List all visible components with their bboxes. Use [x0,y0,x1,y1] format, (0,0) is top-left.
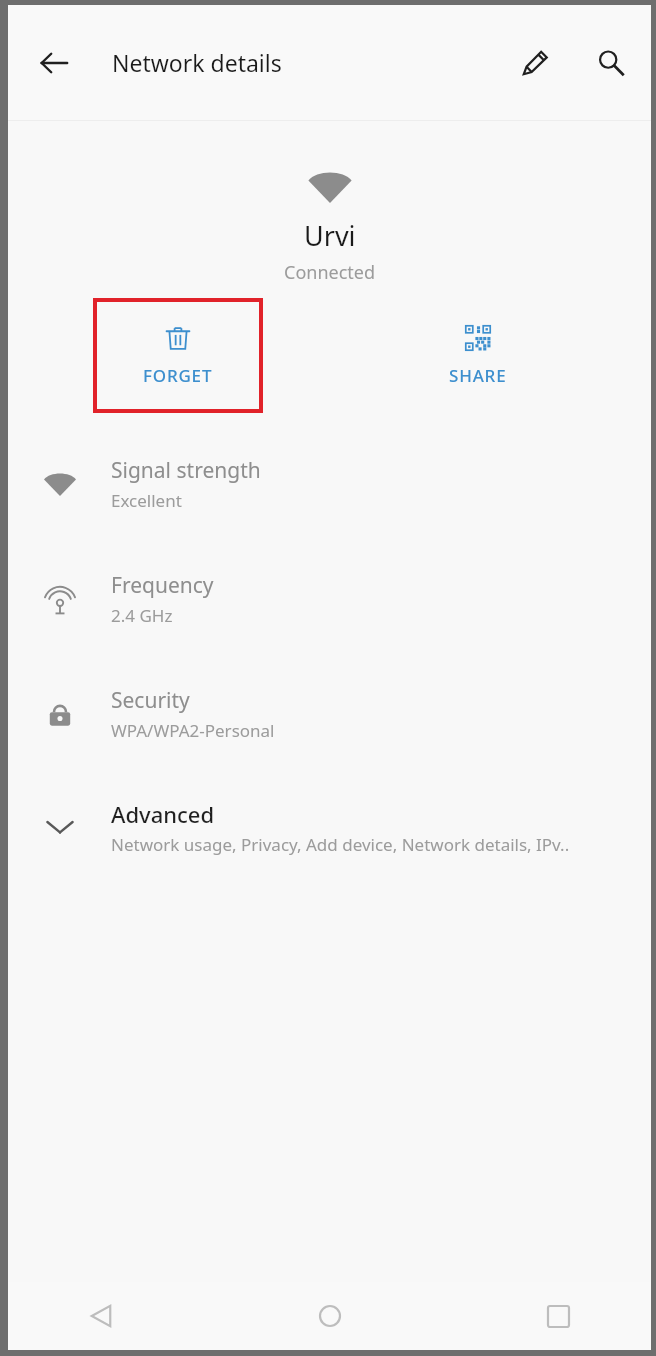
button[interactable]: Recent apps [529,1287,587,1345]
staticText: Frequency [111,571,214,600]
button[interactable]: Security [8,656,651,771]
staticText: FORGET [143,364,213,387]
staticText: Advanced [111,799,215,829]
staticText: Signal strength [111,456,261,485]
staticText: 2.4 GHz [111,604,173,627]
staticText: SHARE [449,364,507,387]
button[interactable]: Frequency [8,541,651,656]
button[interactable]: Edit [507,35,563,91]
button[interactable]: SHARE [393,298,563,413]
staticText: Connected [284,260,376,285]
button[interactable]: Search [583,35,639,91]
staticText: WPA/WPA2-Personal [111,719,275,742]
button[interactable]: Back [72,1287,130,1345]
button[interactable]: Home [301,1287,359,1345]
button[interactable]: Signal strength [8,426,651,541]
button[interactable]: Advanced [8,771,651,883]
staticText: Network usage, Privacy, Add device, Netw… [111,833,570,856]
staticText: Security [111,686,190,715]
button[interactable]: Back [26,35,82,91]
staticText: Network details [112,47,282,78]
staticText: Excellent [111,489,182,512]
button[interactable]: FORGET [93,298,263,413]
staticText: Urvi [304,217,356,254]
